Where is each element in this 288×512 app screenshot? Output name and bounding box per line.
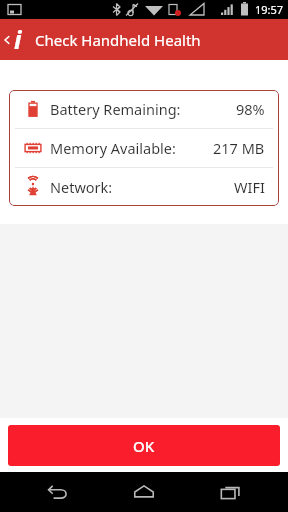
other: Battery [24, 100, 42, 118]
other: Back [0, 19, 13, 60]
staticText: 19:57 [255, 2, 284, 17]
button[interactable]: Memory [9, 129, 279, 167]
button[interactable]: Home [115, 472, 173, 512]
button[interactable]: Recent apps [202, 472, 260, 512]
staticText: 98% [236, 99, 265, 119]
staticText: Battery Remaining: [50, 99, 181, 119]
staticText: Memory Available: [50, 138, 176, 158]
other: Memory [24, 139, 42, 157]
button[interactable]: Network [9, 168, 279, 206]
other: Network [24, 178, 42, 196]
button[interactable]: Back [29, 472, 87, 512]
staticText: Check Handheld Health [35, 30, 201, 50]
staticText: 217 MB [213, 138, 265, 158]
staticText: WIFI [234, 177, 265, 197]
button[interactable]: OK [8, 425, 280, 466]
staticText: OK [133, 436, 155, 456]
button[interactable]: Battery [9, 90, 279, 128]
staticText: Network: [50, 177, 113, 197]
staticText: i [14, 22, 22, 56]
button[interactable]: Back [0, 19, 288, 60]
